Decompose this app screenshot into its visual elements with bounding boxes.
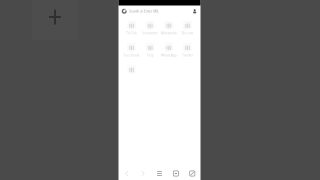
button[interactable] bbox=[122, 65, 141, 79]
button[interactable]: Menu bbox=[151, 167, 168, 180]
staticText: Yelp bbox=[147, 53, 154, 57]
button[interactable]: Discord bbox=[178, 21, 197, 35]
staticText: Search or Enter URL bbox=[129, 9, 159, 13]
staticText: Twitter bbox=[182, 53, 193, 57]
staticText: Facebook bbox=[123, 53, 139, 57]
button[interactable]: Forward bbox=[135, 167, 151, 180]
button[interactable]: Back bbox=[118, 167, 135, 180]
button[interactable]: WhatsApp bbox=[159, 43, 178, 57]
button[interactable]: Share bbox=[184, 167, 200, 180]
button[interactable]: New tab bbox=[32, 0, 78, 40]
button[interactable]: TikTok bbox=[122, 21, 141, 35]
button[interactable]: Yelp bbox=[141, 43, 159, 57]
staticText: Wikipedia bbox=[161, 31, 177, 35]
button[interactable]: Twitter bbox=[178, 43, 197, 57]
button[interactable]: Tabs bbox=[168, 167, 184, 180]
button[interactable]: Wikipedia bbox=[159, 21, 178, 35]
staticText: Instagram bbox=[142, 31, 158, 35]
staticText: TikTok bbox=[126, 31, 137, 35]
button[interactable]: Search or Enter URL bbox=[118, 5, 200, 17]
button[interactable]: Instagram bbox=[141, 21, 159, 35]
button[interactable]: Facebook bbox=[122, 43, 141, 57]
staticText: WhatsApp bbox=[161, 53, 177, 57]
staticText: Discord bbox=[181, 31, 193, 35]
